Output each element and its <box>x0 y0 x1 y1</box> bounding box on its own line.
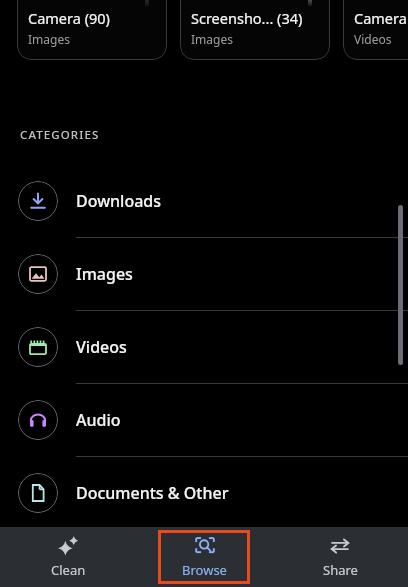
staticText: Camera <box>354 8 407 28</box>
staticText: Images <box>28 31 70 47</box>
button[interactable]: Camera <box>343 0 408 60</box>
staticText: Camera (90) <box>28 8 110 28</box>
staticText: Downloads <box>76 190 162 212</box>
button[interactable]: Share <box>272 527 408 587</box>
button[interactable]: Clean <box>0 527 136 587</box>
button[interactable]: Audio <box>0 384 408 456</box>
staticText: Audio <box>76 409 121 431</box>
button[interactable]: Camera (90) <box>17 0 167 60</box>
staticText: Documents & Other <box>76 482 229 504</box>
button[interactable]: Videos <box>0 311 408 383</box>
staticText: Videos <box>354 31 392 47</box>
staticText: Clean <box>51 561 86 579</box>
staticText: Share <box>323 561 358 579</box>
button[interactable]: Browse <box>182 527 227 587</box>
staticText: Browse <box>182 561 227 579</box>
button[interactable]: Downloads <box>0 165 408 237</box>
button[interactable]: Documents & Other <box>0 457 408 529</box>
button[interactable]: Screensho... (34) <box>180 0 330 60</box>
staticText: Videos <box>76 336 127 358</box>
staticText: Screensho... (34) <box>191 8 303 28</box>
button[interactable]: Images <box>0 238 408 310</box>
staticText: Images <box>191 31 233 47</box>
staticText: CATEGORIES <box>20 127 100 143</box>
staticText: Images <box>76 263 133 285</box>
